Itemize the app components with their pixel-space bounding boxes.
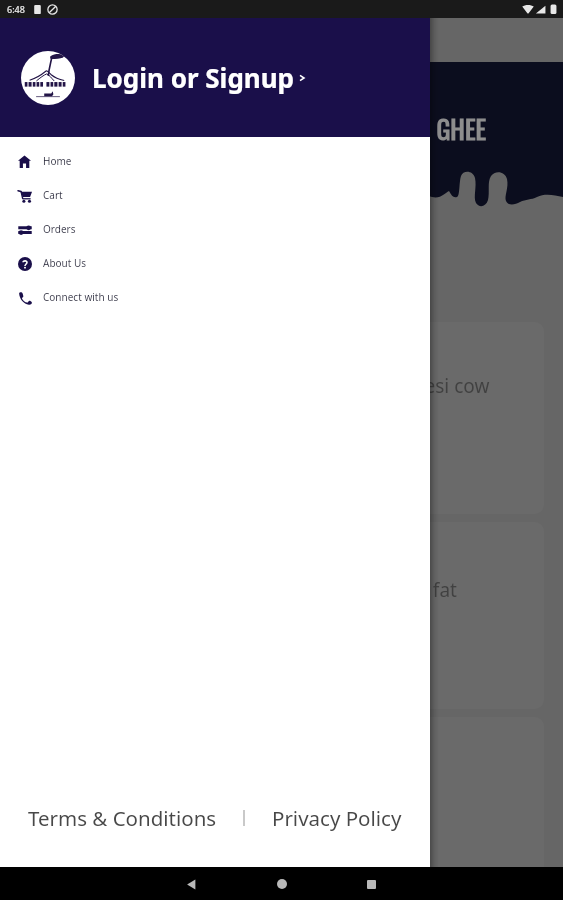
staticText: Fresh desi cow	[359, 373, 490, 399]
button[interactable]: Fresh desi cow	[19, 322, 544, 514]
button[interactable]: Home	[267, 869, 297, 899]
button[interactable]: Recent apps	[356, 869, 386, 899]
button[interactable]: Orders	[0, 212, 430, 246]
staticText: Login or Signup	[92, 60, 295, 95]
staticText: Cart	[43, 188, 63, 202]
button[interactable]: About Us	[0, 246, 430, 280]
staticText: A2 low fat	[369, 577, 457, 603]
button[interactable]: Pure ghee	[19, 717, 544, 900]
staticText: 6:48	[7, 3, 25, 15]
button[interactable]: Home	[0, 144, 430, 178]
staticText: MILK & GHEE	[362, 109, 487, 148]
button[interactable]: Login or Signup	[0, 18, 430, 137]
button[interactable]: Privacy Policy	[267, 797, 407, 839]
staticText: Terms & Conditions	[28, 804, 217, 832]
staticText: Connect with us	[43, 290, 119, 304]
button[interactable]: Back	[176, 869, 206, 899]
button[interactable]: Terms & Conditions	[23, 797, 222, 839]
staticText: Home	[43, 154, 72, 168]
staticText: About Us	[43, 256, 87, 270]
button[interactable]: Connect with us	[0, 280, 430, 314]
staticText: Orders	[43, 222, 76, 236]
button[interactable]: A2 low fat	[19, 522, 544, 709]
staticText: Privacy Policy	[272, 804, 402, 832]
button[interactable]: Cart	[0, 178, 430, 212]
